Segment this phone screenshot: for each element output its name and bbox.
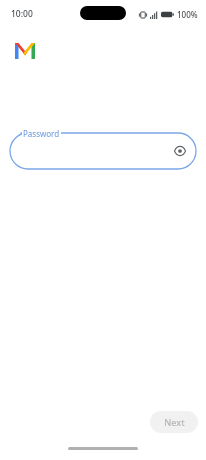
staticText: Password — [23, 128, 60, 139]
staticText: Next — [164, 416, 185, 428]
button[interactable]: Show password — [171, 142, 189, 160]
staticText: 10:00 — [11, 8, 33, 20]
staticText: 100% — [177, 9, 198, 20]
button[interactable]: Password — [10, 133, 196, 169]
button[interactable]: Next — [150, 411, 198, 433]
